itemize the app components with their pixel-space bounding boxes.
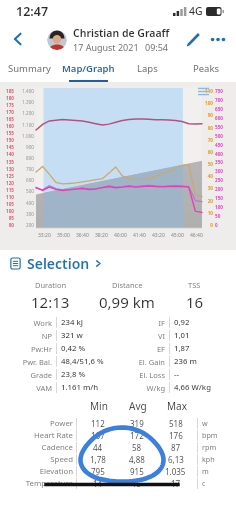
- staticText: VI: [121, 331, 165, 341]
- staticText: 15: [132, 478, 142, 489]
- button[interactable]: Back: [4, 25, 32, 53]
- staticText: 44: [93, 442, 103, 453]
- staticText: 120: [0, 180, 14, 186]
- staticText: Avg: [129, 399, 147, 413]
- staticText: 112: [91, 418, 105, 429]
- staticText: 105: [0, 201, 14, 207]
- staticText: 90: [0, 222, 14, 228]
- staticText: 17 August 2021: [73, 41, 139, 53]
- staticText: 172: [130, 430, 144, 441]
- staticText: Laps: [137, 62, 158, 75]
- staticText: 600: [215, 115, 231, 121]
- staticText: 518: [169, 418, 183, 429]
- staticText: 1,78: [90, 454, 106, 465]
- staticText: IF: [121, 318, 165, 328]
- staticText: NP: [8, 331, 52, 341]
- staticText: 40: [200, 173, 213, 179]
- staticText: 0,92: [174, 317, 228, 328]
- staticText: Distance: [112, 280, 143, 290]
- staticText: 95: [0, 215, 14, 221]
- staticText: 500: [15, 188, 34, 194]
- staticText: 12:47: [16, 3, 49, 20]
- staticText: 45:00: [171, 232, 184, 239]
- staticText: Heart Rate: [6, 430, 73, 441]
- staticText: 16: [186, 292, 204, 312]
- staticText: 48,4/51,6 %: [61, 356, 115, 367]
- staticText: 1,01: [174, 330, 228, 341]
- button[interactable]: Peaks: [177, 56, 236, 80]
- staticText: 40:00: [114, 232, 127, 239]
- staticText: 185: [0, 88, 14, 94]
- staticText: 130: [0, 166, 14, 172]
- staticText: 1.200: [15, 110, 34, 116]
- staticText: 1.400: [15, 88, 34, 94]
- staticText: 87: [171, 442, 181, 453]
- button[interactable]: Christian de Graaff: [47, 26, 170, 53]
- staticText: VAM: [8, 383, 52, 393]
- button[interactable]: More options: [206, 27, 230, 51]
- staticText: Pw:Hr: [8, 344, 52, 354]
- staticText: 30: [200, 185, 213, 191]
- staticText: Map/Graph: [62, 62, 115, 75]
- staticText: Temperature: [6, 478, 73, 489]
- staticText: 175: [0, 102, 14, 108]
- staticText: 300: [215, 168, 231, 174]
- staticText: 100: [200, 100, 213, 106]
- staticText: 1.161 m/h: [61, 382, 115, 393]
- staticText: 915: [130, 466, 144, 477]
- staticText: 165: [0, 116, 14, 122]
- staticText: rpm: [202, 442, 230, 452]
- button[interactable]: Edit: [180, 27, 204, 51]
- staticText: m: [202, 466, 230, 476]
- staticText: 36:40: [76, 232, 89, 239]
- staticText: Summary: [8, 62, 51, 75]
- button[interactable]: Chart legend: [196, 84, 210, 98]
- staticText: 150: [215, 195, 231, 201]
- staticText: 46:40: [190, 232, 203, 239]
- staticText: 12:13: [31, 292, 70, 312]
- staticText: 70: [200, 137, 213, 143]
- staticText: kph: [202, 454, 230, 464]
- staticText: 750: [215, 88, 231, 94]
- staticText: Work: [8, 318, 52, 328]
- staticText: Selection: [27, 254, 90, 273]
- staticText: 60: [200, 149, 213, 155]
- staticText: 200: [15, 222, 34, 228]
- staticText: 236 m: [174, 356, 228, 367]
- staticText: 234 kJ: [61, 317, 115, 328]
- staticText: 38:20: [95, 232, 108, 239]
- staticText: 33:20: [38, 232, 51, 239]
- staticText: --: [174, 369, 228, 380]
- staticText: Elevation: [6, 466, 73, 477]
- staticText: 50: [215, 213, 231, 219]
- staticText: 321 w: [61, 330, 115, 341]
- staticText: 110: [0, 194, 14, 200]
- staticText: 170: [0, 109, 14, 115]
- button[interactable]: Map/Graph: [59, 56, 118, 80]
- staticText: 550: [215, 124, 231, 130]
- staticText: 250: [215, 177, 231, 183]
- staticText: 20: [200, 198, 213, 204]
- staticText: 43:20: [152, 232, 165, 239]
- staticText: 300: [15, 211, 34, 217]
- staticText: Peaks: [193, 62, 220, 75]
- button[interactable]: Summary: [0, 56, 59, 80]
- staticText: 1.035: [165, 466, 186, 477]
- staticText: 155: [0, 130, 14, 136]
- staticText: 700: [215, 97, 231, 103]
- staticText: 400: [215, 151, 231, 157]
- button[interactable]: Selection: [10, 250, 236, 276]
- staticText: EF: [121, 344, 165, 354]
- staticText: 135: [0, 159, 14, 165]
- staticText: 1.100: [15, 122, 34, 128]
- staticText: 150: [0, 137, 14, 143]
- staticText: 650: [215, 106, 231, 112]
- staticText: Power: [6, 418, 73, 429]
- staticText: 900: [15, 144, 34, 150]
- staticText: 80: [200, 125, 213, 131]
- staticText: 145: [0, 144, 14, 150]
- staticText: 0,42 %: [61, 343, 115, 354]
- button[interactable]: Laps: [118, 56, 177, 80]
- staticText: 350: [215, 159, 231, 165]
- staticText: 700: [15, 166, 34, 172]
